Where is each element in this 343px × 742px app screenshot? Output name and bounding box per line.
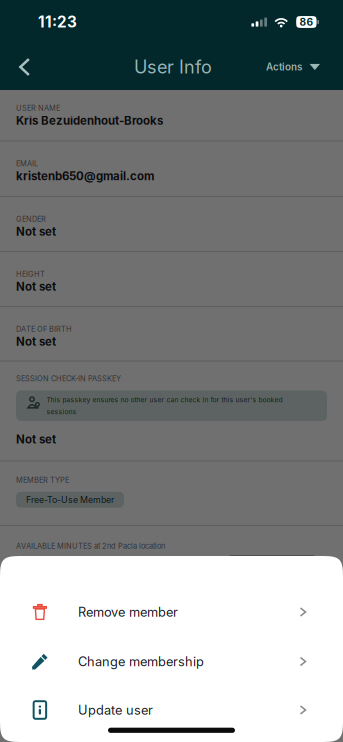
staticText: Not set bbox=[16, 279, 56, 293]
staticText: Change membership bbox=[78, 654, 204, 669]
staticText: HEIGHT bbox=[16, 270, 45, 279]
button[interactable]: Change membership bbox=[0, 637, 343, 686]
staticText: 11:23 bbox=[38, 13, 77, 31]
button[interactable]: Remove member bbox=[0, 587, 343, 637]
staticText: Kris Bezuidenhout-Brooks bbox=[16, 113, 163, 127]
staticText: AVAILABLE MINUTES at 2nd Pacla location bbox=[16, 541, 165, 550]
button[interactable]: Actions bbox=[255, 44, 331, 90]
staticText: This passkey ensures no other user can c… bbox=[46, 396, 282, 416]
staticText: User Info bbox=[134, 56, 212, 78]
staticText: 86 bbox=[299, 16, 313, 28]
staticText: Not set bbox=[16, 334, 56, 348]
button[interactable]: Update user bbox=[0, 686, 343, 734]
staticText: Not set bbox=[16, 224, 56, 238]
staticText: DATE OF BIRTH bbox=[16, 325, 72, 334]
button[interactable]: Back bbox=[0, 44, 45, 90]
staticText: EMAIL bbox=[16, 159, 38, 168]
staticText: MEMBER TYPE bbox=[16, 475, 69, 484]
staticText: Actions bbox=[266, 61, 302, 73]
staticText: Update user bbox=[78, 702, 153, 718]
staticText: USER NAME bbox=[16, 104, 60, 113]
staticText: GENDER bbox=[16, 215, 46, 224]
staticText: Remove member bbox=[78, 604, 178, 620]
staticText: Free-To-Use Member bbox=[26, 494, 114, 505]
staticText: kristenb650@gmail.com bbox=[16, 169, 154, 183]
staticText: SESSION CHECK-IN PASSKEY bbox=[16, 374, 121, 383]
staticText: Not set bbox=[16, 432, 56, 446]
